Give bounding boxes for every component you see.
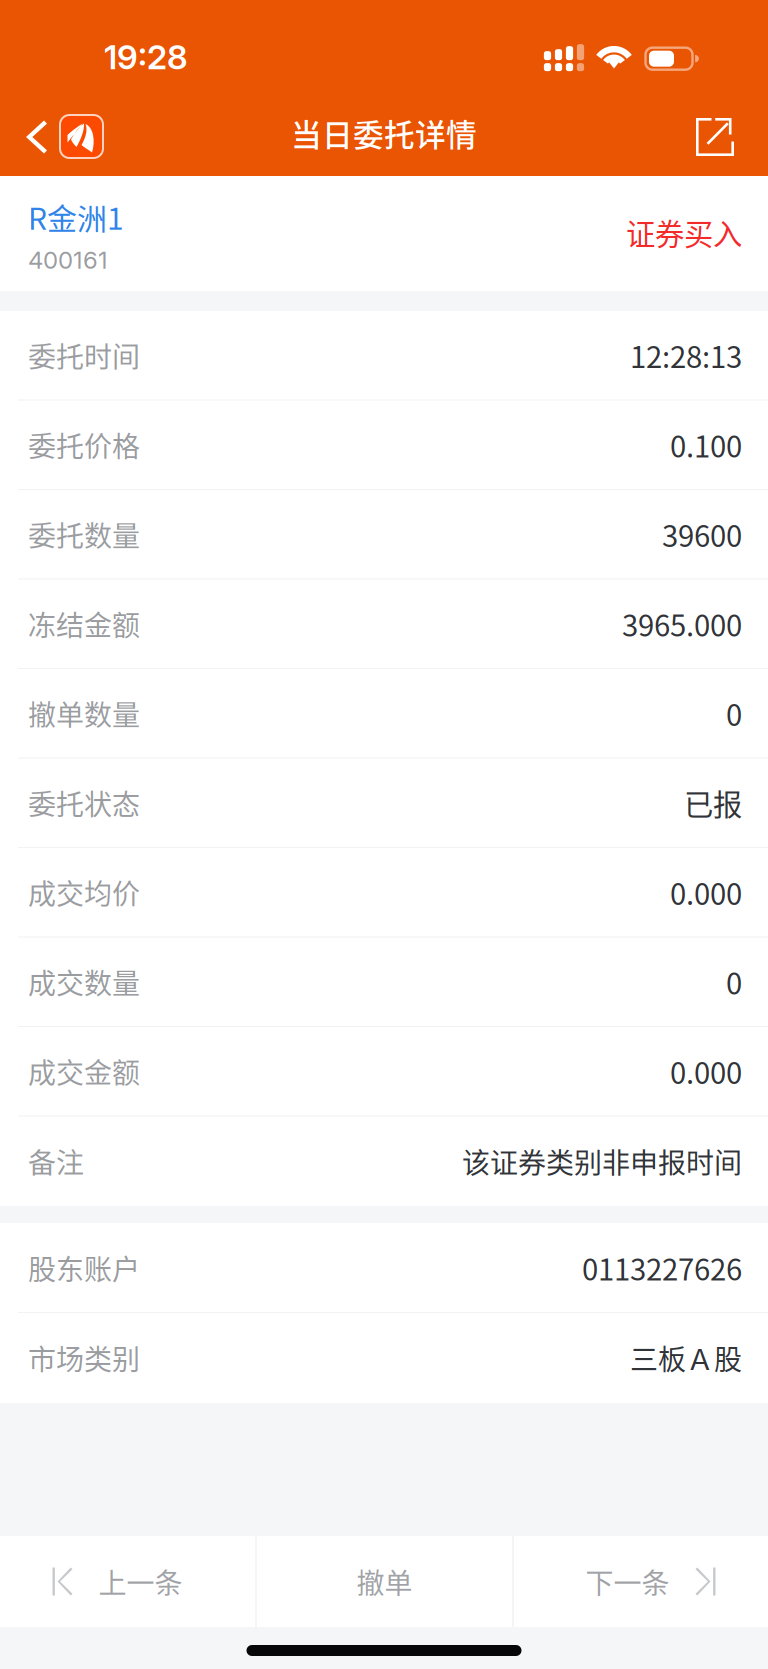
staticText: 委托状态 [28, 782, 140, 823]
button[interactable]: 撤单 [256, 1536, 512, 1627]
staticText: 冻结金额 [28, 603, 140, 644]
staticText: R金洲1 [28, 195, 124, 238]
staticText: 12:28:13 [630, 334, 742, 376]
staticText: 该证券类别非申报时间 [462, 1141, 742, 1181]
staticText: 0 [726, 960, 742, 1003]
staticText: 市场类别 [28, 1337, 140, 1378]
staticText: 0.000 [670, 871, 742, 913]
staticText: 委托价格 [28, 424, 140, 465]
staticText: 0.100 [670, 423, 742, 466]
button[interactable]: 返回 [0, 90, 113, 176]
staticText: 39600 [662, 513, 742, 555]
button[interactable]: 分享 [672, 90, 768, 176]
staticText: 成交金额 [28, 1051, 140, 1091]
staticText: 成交数量 [28, 961, 140, 1002]
staticText: 股东账户 [28, 1247, 140, 1288]
staticText: 三板Ａ股 [630, 1337, 742, 1378]
staticText: 0113227626 [582, 1246, 742, 1289]
staticText: 委托数量 [28, 514, 140, 554]
staticText: 备注 [28, 1141, 84, 1181]
staticText: 下一条 [585, 1561, 669, 1602]
staticText: 当日委托详情 [291, 111, 477, 155]
staticText: 19:28 [104, 37, 188, 77]
staticText: 委托时间 [28, 335, 140, 375]
button[interactable]: 下一条 [513, 1536, 768, 1627]
staticText: 撤单 [356, 1561, 412, 1602]
staticText: 3965.000 [622, 602, 742, 645]
staticText: 上一条 [98, 1561, 182, 1602]
staticText: 400161 [28, 245, 108, 274]
staticText: 已报 [684, 781, 742, 824]
staticText: 证券买入 [626, 211, 742, 253]
button[interactable]: 上一条 [0, 1536, 255, 1627]
staticText: 成交均价 [28, 872, 140, 912]
staticText: 0.000 [670, 1050, 742, 1092]
staticText: 0 [726, 692, 742, 734]
staticText: 撤单数量 [28, 693, 140, 733]
